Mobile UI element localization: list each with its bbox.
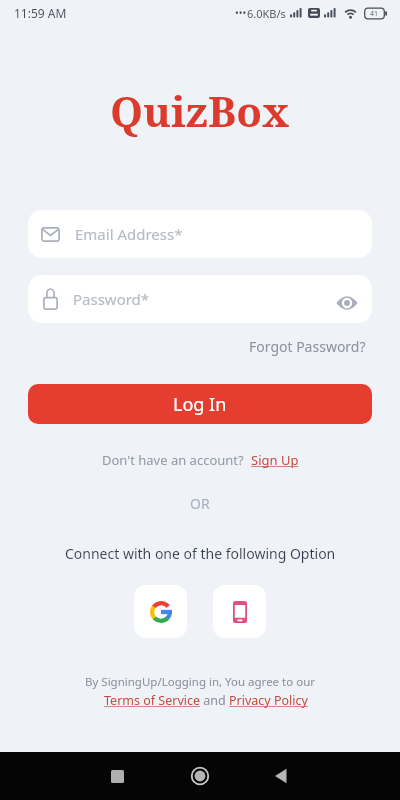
button[interactable]: Log In xyxy=(28,384,372,424)
button[interactable] xyxy=(190,766,210,786)
button[interactable] xyxy=(273,768,289,784)
staticText: Don't have an account? xyxy=(102,451,251,469)
staticText: Log In xyxy=(173,392,227,417)
staticText: 41 xyxy=(370,9,379,19)
staticText: ••• xyxy=(235,6,247,20)
button[interactable] xyxy=(111,770,124,783)
staticText: Connect with one of the following Option xyxy=(65,544,336,563)
staticText: By SigningUp/Logging in, You agree to ou… xyxy=(85,674,316,690)
staticText: 11:59 AM xyxy=(14,5,67,21)
button[interactable]: Forgot Password? xyxy=(249,337,366,356)
button[interactable]: Password* xyxy=(28,275,372,323)
button[interactable]: Don't have an account? xyxy=(102,451,299,469)
staticText: Sign Up xyxy=(251,451,299,469)
button[interactable]: Terms of Service and Privacy Policy xyxy=(104,692,308,709)
staticText: 6.0KB/s xyxy=(247,6,286,21)
staticText: Password* xyxy=(73,289,150,309)
button[interactable] xyxy=(213,585,266,638)
staticText: OR xyxy=(190,494,210,513)
button[interactable] xyxy=(134,585,187,638)
button[interactable]: Email Address* xyxy=(28,210,372,258)
staticText: QuizBox xyxy=(110,82,290,139)
staticText: Email Address* xyxy=(75,224,183,244)
